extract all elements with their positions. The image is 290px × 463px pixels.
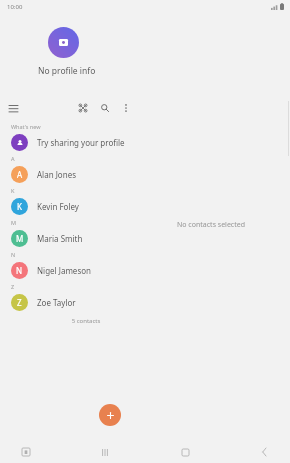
staticText: M	[11, 219, 16, 226]
button[interactable]: Home	[175, 442, 195, 462]
button[interactable]: More options	[117, 99, 135, 117]
staticText: Try sharing your profile	[37, 137, 125, 148]
staticText: 10:00	[7, 3, 23, 11]
staticText: Nigel Jameson	[37, 265, 91, 276]
staticText: Kevin Foley	[37, 201, 79, 212]
staticText: What's new	[11, 123, 41, 130]
staticText: A	[17, 169, 23, 180]
staticText: Maria Smith	[37, 233, 83, 244]
staticText: No contacts selected	[177, 220, 246, 230]
button[interactable]: Menu	[3, 98, 23, 118]
staticText: Z	[17, 297, 22, 308]
staticText: A	[11, 155, 15, 162]
button[interactable]: Back	[254, 442, 274, 462]
staticText: Z	[11, 283, 15, 290]
button[interactable]: Z	[0, 291, 290, 313]
staticText: K	[17, 201, 22, 212]
staticText: Zoe Taylor	[37, 297, 76, 308]
staticText: K	[11, 187, 15, 194]
staticText: N	[16, 265, 23, 276]
button[interactable]: Hide keyboard	[16, 442, 36, 462]
button[interactable]: Merge contacts	[74, 99, 92, 117]
button[interactable]: K	[0, 195, 290, 217]
button[interactable]: Profile photo	[48, 27, 79, 58]
staticText: Alan Jones	[37, 169, 76, 180]
button[interactable]: Try sharing your profile	[0, 131, 290, 153]
button[interactable]: Add contact	[99, 404, 121, 426]
button[interactable]: Recents	[95, 442, 115, 462]
staticText: M	[16, 233, 24, 244]
button[interactable]: Search	[96, 99, 114, 117]
button[interactable]: M	[0, 227, 290, 249]
staticText: 5 contacts	[0, 317, 172, 325]
button[interactable]: A	[0, 163, 290, 185]
staticText: N	[11, 251, 16, 258]
button[interactable]: N	[0, 259, 290, 281]
staticText: No profile info	[38, 65, 96, 77]
